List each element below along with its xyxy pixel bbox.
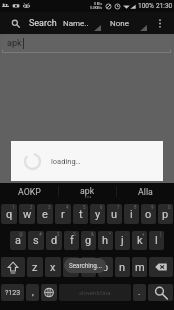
button[interactable]: p — [158, 204, 173, 224]
button[interactable]: apk — [59, 183, 116, 200]
staticText: . — [138, 287, 141, 298]
button[interactable]: Shift — [1, 257, 25, 277]
button[interactable]: d — [46, 231, 62, 250]
staticText: d — [51, 234, 58, 247]
button[interactable]: i — [124, 204, 139, 224]
staticText: h — [102, 234, 109, 247]
button[interactable]: y — [90, 204, 105, 224]
staticText: 3 — [48, 205, 51, 210]
staticText: 8 — [134, 205, 137, 210]
staticText: apk — [7, 38, 22, 49]
staticText: Searching... — [69, 262, 102, 269]
staticText: v — [86, 261, 92, 274]
staticText: j — [121, 234, 124, 247]
staticText: s — [33, 234, 39, 247]
button[interactable]: t — [73, 204, 88, 224]
button[interactable]: h — [98, 231, 113, 250]
staticText: * — [109, 232, 111, 237]
staticText: l — [155, 234, 158, 247]
staticText: None — [110, 19, 129, 28]
staticText: , — [32, 287, 34, 298]
button[interactable]: c — [63, 257, 79, 277]
staticText: n — [119, 261, 126, 274]
button[interactable]: r — [55, 204, 71, 224]
staticText: p — [162, 208, 169, 221]
staticText: r — [61, 208, 65, 221]
staticText: Search — [29, 18, 57, 29]
button[interactable]: Name.. — [63, 12, 101, 34]
staticText: b — [102, 261, 109, 274]
button[interactable]: apk — [2, 36, 171, 53]
button[interactable]: f — [64, 231, 79, 250]
button[interactable]: Search — [148, 284, 173, 301]
button[interactable]: e — [37, 204, 53, 224]
staticText: 4 — [66, 205, 69, 210]
staticText: 9 — [151, 205, 154, 210]
button[interactable]: q — [1, 204, 17, 224]
button[interactable]: g — [81, 231, 96, 250]
button[interactable]: n — [115, 257, 130, 277]
button[interactable]: Searching... — [64, 258, 106, 273]
staticText: x — [50, 261, 56, 274]
staticText: loading… — [51, 157, 81, 166]
button[interactable]: Alla — [117, 183, 174, 200]
staticText: q — [6, 208, 13, 221]
button[interactable]: u — [107, 204, 122, 224]
button[interactable]: z — [27, 257, 43, 277]
staticText: 6 — [100, 205, 103, 210]
button[interactable]: Search — [29, 12, 60, 34]
staticText: @ — [19, 232, 24, 237]
staticText: # — [39, 232, 42, 237]
button[interactable]: AOKP — [0, 183, 58, 200]
button[interactable]: o — [141, 204, 156, 224]
button[interactable]: j — [115, 231, 130, 250]
staticText: - — [126, 232, 128, 237]
staticText: % — [73, 232, 77, 237]
staticText: $ — [57, 232, 60, 237]
staticText: e — [42, 208, 48, 221]
button[interactable]: Search — [6, 12, 24, 34]
button[interactable]: Change keyboard — [41, 284, 57, 301]
staticText: g — [85, 234, 92, 247]
button[interactable]: m — [132, 257, 147, 277]
button[interactable]: k — [132, 231, 147, 250]
staticText: u — [111, 208, 118, 221]
staticText: 5.0KB/s — [90, 6, 103, 10]
button[interactable]: s — [28, 231, 44, 250]
staticText: slovenščina — [79, 289, 111, 296]
button[interactable]: Backspace — [149, 257, 173, 277]
staticText: 100% — [138, 2, 154, 10]
button[interactable]: More options — [152, 12, 168, 34]
staticText: o — [145, 208, 152, 221]
staticText: apk — [80, 186, 95, 196]
staticText: 5 — [83, 205, 86, 210]
staticText: i — [130, 208, 133, 221]
staticText: & — [91, 232, 94, 237]
button[interactable]: . — [133, 284, 146, 301]
staticText: 0 — [168, 205, 171, 210]
button[interactable]: a — [10, 231, 26, 250]
staticText: a — [15, 234, 21, 247]
staticText: 2 — [30, 205, 33, 210]
staticText: 0 B/s — [94, 2, 103, 6]
staticText: 1 — [12, 205, 15, 210]
staticText: Name.. — [63, 19, 89, 28]
button[interactable]: ?123 — [1, 284, 24, 301]
staticText: c — [68, 261, 74, 274]
staticText: + — [142, 232, 145, 237]
button[interactable]: v — [81, 257, 96, 277]
button[interactable]: x — [45, 257, 61, 277]
staticText: AOKP — [18, 187, 41, 197]
button[interactable]: Space — [59, 284, 131, 301]
staticText: 7 — [117, 205, 120, 210]
staticText: w — [23, 208, 32, 221]
button[interactable]: , — [26, 284, 39, 301]
button[interactable]: b — [98, 257, 113, 277]
staticText: t — [79, 208, 83, 221]
staticText: z — [32, 261, 38, 274]
button[interactable]: None — [110, 12, 147, 34]
button[interactable]: w — [19, 204, 35, 224]
button[interactable]: l — [149, 231, 164, 250]
staticText: Alla — [138, 187, 153, 197]
staticText: y — [95, 208, 101, 221]
